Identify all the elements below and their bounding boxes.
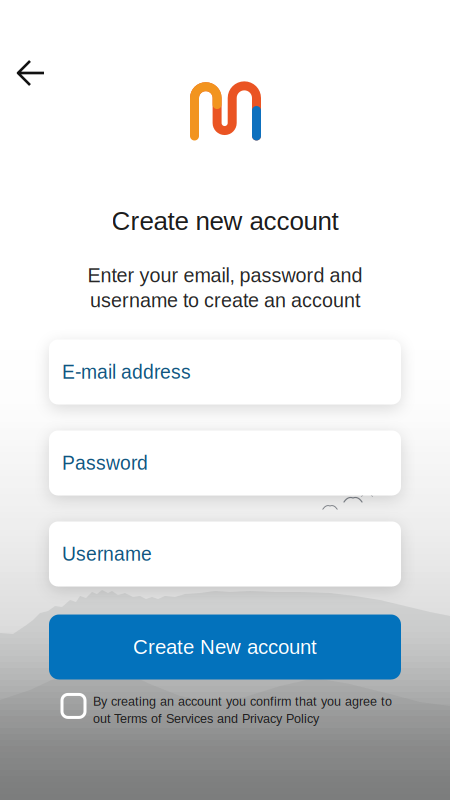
staticText: Password — [62, 452, 148, 474]
button[interactable]: Back — [9, 49, 57, 97]
staticText: username to create an account — [90, 289, 360, 311]
staticText: Create New account — [133, 636, 317, 658]
button[interactable]: By creating an account you confirm that … — [62, 694, 392, 726]
staticText: Username — [62, 543, 152, 565]
button[interactable]: Password — [49, 430, 401, 495]
button[interactable]: Username — [49, 521, 401, 586]
button[interactable]: Create New account — [49, 614, 401, 679]
button[interactable]: E-mail address — [49, 339, 401, 404]
staticText: Create new account — [111, 206, 338, 235]
staticText: Enter your email, password and — [87, 264, 362, 286]
staticText: out Terms of Services and Privacy Policy — [93, 711, 319, 726]
staticText: E-mail address — [62, 361, 191, 383]
staticText: By creating an account you confirm that … — [93, 694, 392, 708]
